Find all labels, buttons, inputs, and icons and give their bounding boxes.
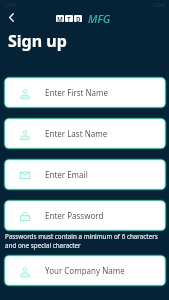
button[interactable]: Back — [3, 9, 19, 25]
staticText: Enter First Name — [45, 87, 109, 98]
staticText: 100% — [152, 2, 165, 9]
staticText: MFG — [88, 11, 111, 26]
staticText: Your Company Name — [45, 265, 125, 276]
button[interactable]: Enter Last Name — [6, 120, 164, 147]
button[interactable]: Enter Password — [6, 202, 164, 229]
staticText: Enter Email — [45, 169, 88, 180]
staticText: Enter Last Name — [45, 128, 108, 139]
staticText: Passwords must contain a minimum of 6 ch… — [5, 232, 161, 250]
staticText: Enter Password — [45, 210, 104, 221]
staticText: 12:04 — [4, 2, 17, 9]
staticText: M — [57, 15, 63, 22]
staticText: D — [76, 15, 81, 22]
button[interactable]: Your Company Name — [6, 257, 164, 284]
button[interactable]: Enter Email — [6, 161, 164, 188]
button[interactable]: Enter First Name — [6, 79, 164, 106]
staticText: Sign up — [8, 30, 67, 52]
staticText: T — [67, 15, 71, 22]
